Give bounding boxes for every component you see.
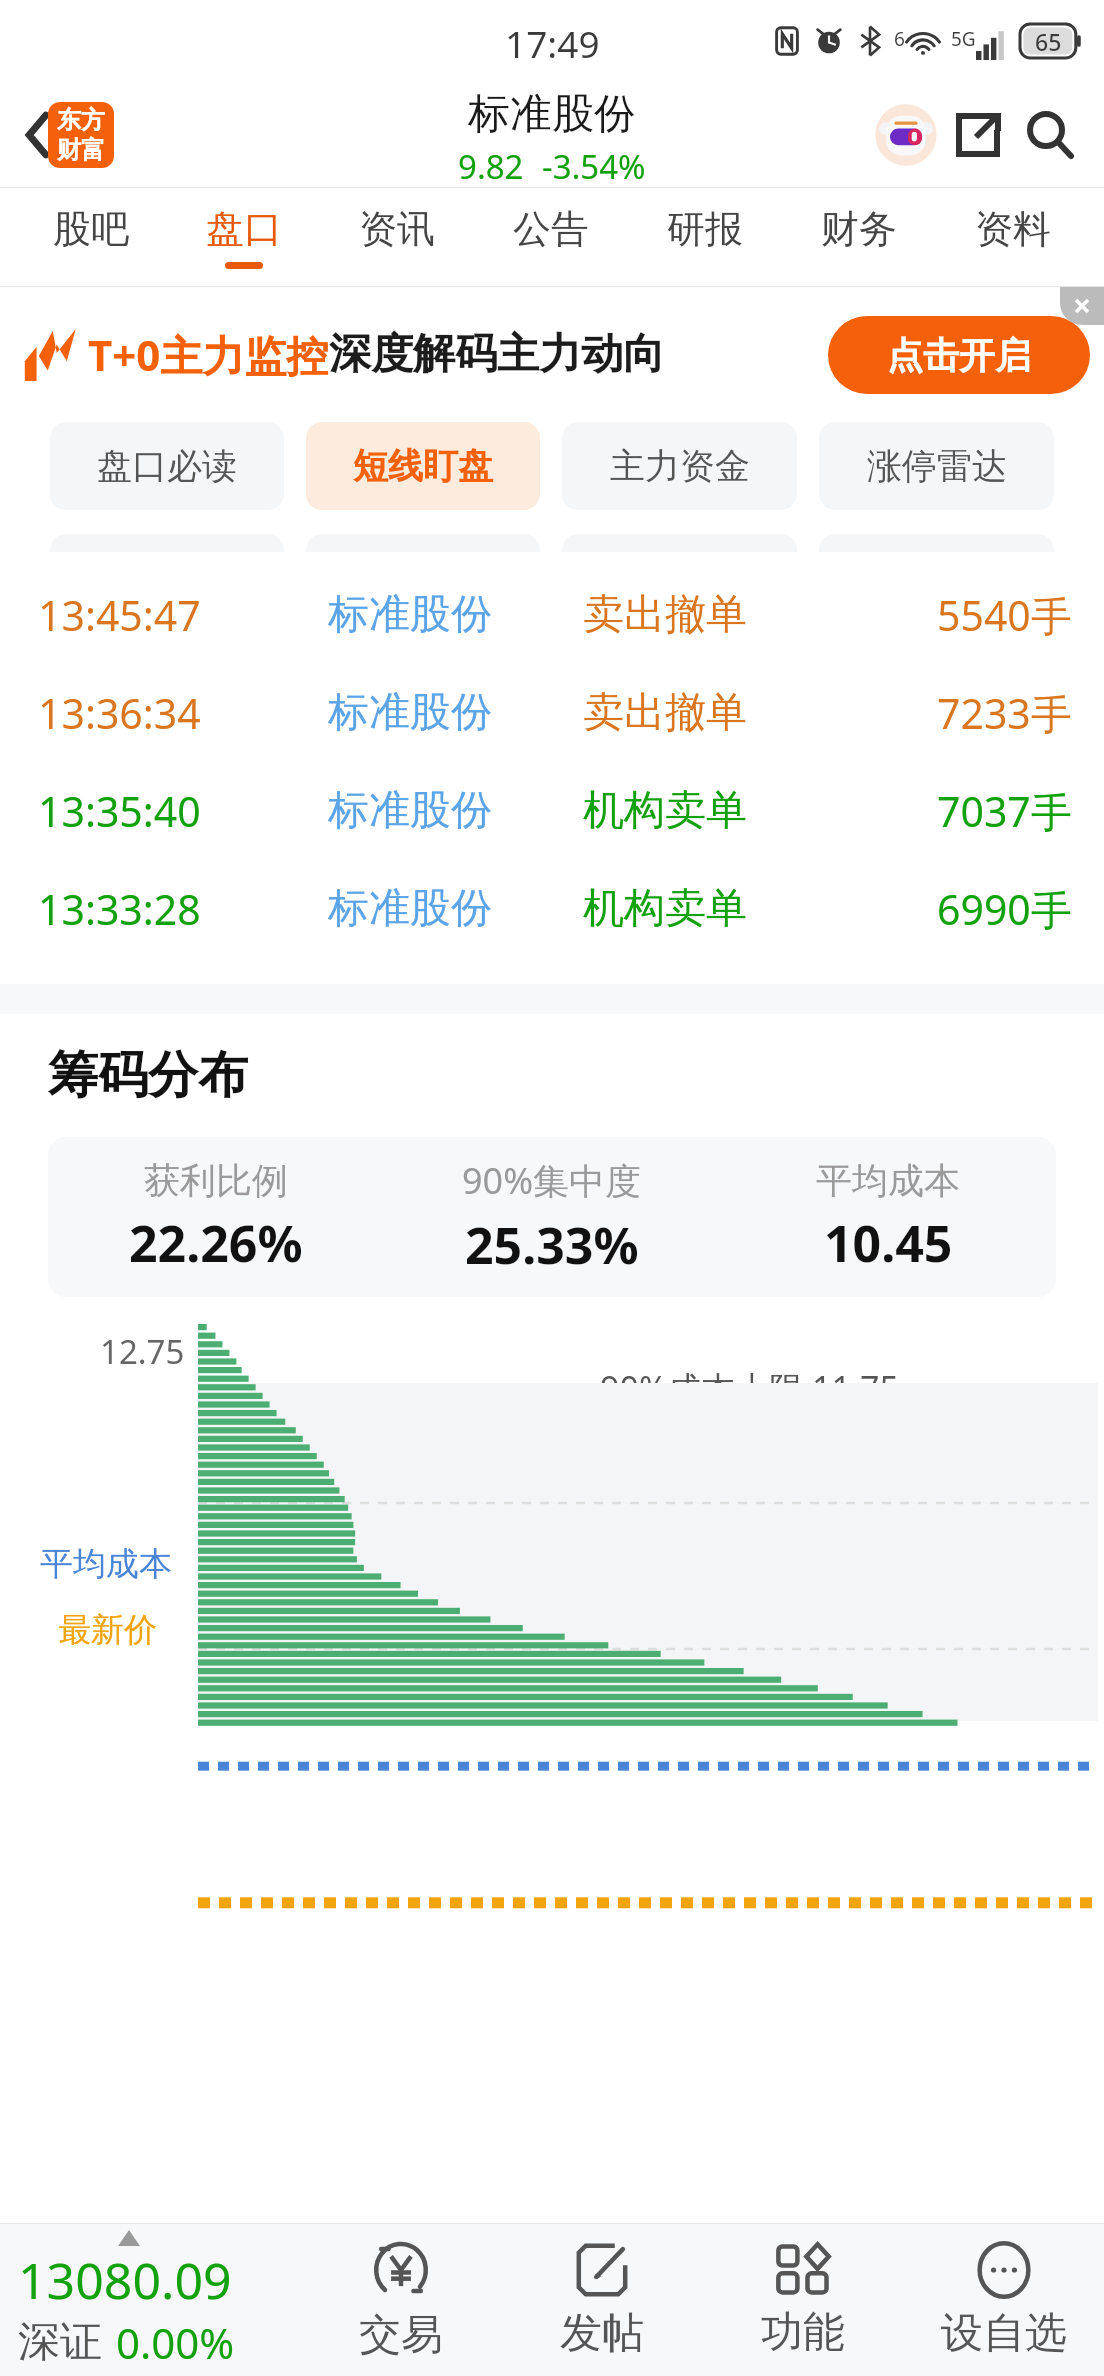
button[interactable]: 资料	[936, 188, 1090, 286]
staticText: 短线盯盘	[353, 444, 493, 488]
staticText: 公告	[513, 205, 589, 253]
staticText: 资讯	[359, 205, 435, 253]
staticText: 标准股份	[328, 589, 492, 641]
staticText: 6	[894, 26, 905, 52]
button[interactable]: Close ad	[1060, 287, 1104, 325]
staticText: 6990手	[937, 881, 1072, 937]
button[interactable]: 设自选	[903, 2224, 1104, 2376]
button[interactable]: 13:33:28	[0, 860, 1104, 958]
staticText: 功能	[761, 2306, 845, 2359]
staticText: 7037手	[937, 783, 1072, 839]
staticText: 标准股份	[328, 687, 492, 739]
button[interactable]: Share	[942, 99, 1014, 171]
staticText: 13:36:34	[38, 685, 201, 741]
button[interactable]: 点击开启	[828, 316, 1090, 394]
button[interactable]: 交易	[300, 2224, 501, 2376]
staticText: 资料	[975, 205, 1051, 253]
button[interactable]: 13:35:40	[0, 762, 1104, 860]
staticText: 标准股份	[328, 785, 492, 837]
staticText: 90%集中度	[462, 1156, 642, 1205]
staticText: 5540手	[937, 587, 1072, 643]
button[interactable]: 股吧	[14, 188, 167, 286]
staticText: 机构卖单	[583, 883, 747, 935]
button[interactable]: 13080.09	[18, 2230, 300, 2371]
button[interactable]: 盘口必读	[50, 422, 284, 510]
staticText: 发帖	[560, 2307, 644, 2360]
staticText: 财富	[57, 135, 105, 165]
button[interactable]: 13:36:34	[0, 664, 1104, 762]
staticText: 点击开启	[887, 333, 1031, 378]
staticText: 股吧	[53, 205, 129, 253]
staticText: 90%成本上限 11.75	[600, 1365, 899, 1411]
button[interactable]: 研报	[628, 188, 782, 286]
staticText: 65	[1035, 26, 1062, 57]
staticText: 平均成本	[40, 1543, 172, 1585]
button[interactable]: 资讯	[320, 188, 474, 286]
staticText: 0.00%	[116, 2314, 235, 2371]
staticText: 9.82	[458, 144, 524, 189]
staticText: 最新价	[58, 1609, 157, 1651]
button[interactable]: 短线盯盘	[306, 422, 540, 510]
button[interactable]: AI assistant	[870, 99, 942, 171]
staticText: 涨停雷达	[867, 444, 1007, 488]
staticText: 标准股份	[328, 883, 492, 935]
staticText: T+0主力监控	[88, 326, 329, 383]
staticText: 筹码分布	[48, 1044, 248, 1107]
button[interactable]: Search	[1014, 99, 1086, 171]
staticText: 深证	[18, 2316, 102, 2369]
staticText: 东方	[57, 105, 105, 135]
staticText: 13:33:28	[38, 881, 201, 937]
button[interactable]: 功能	[702, 2224, 903, 2376]
staticText: 交易	[359, 2309, 443, 2362]
button[interactable]: 财务	[782, 188, 936, 286]
staticText: 盘口	[206, 205, 282, 253]
button[interactable]: 主力资金	[562, 422, 797, 510]
staticText: 22.26%	[129, 1209, 303, 1277]
staticText: 5G	[951, 26, 976, 52]
button[interactable]: 发帖	[501, 2224, 702, 2376]
button[interactable]: 盘口	[167, 188, 320, 286]
button[interactable]: East Money	[48, 102, 114, 168]
staticText: 设自选	[941, 2307, 1067, 2360]
staticText: 主力资金	[610, 444, 750, 488]
button[interactable]: Back	[8, 105, 68, 165]
staticText: 深度解码主力动向	[329, 328, 665, 381]
staticText: 平均成本	[816, 1158, 960, 1203]
button[interactable]: 13:45:47	[0, 566, 1104, 664]
staticText: 13:45:47	[38, 587, 201, 643]
staticText: -3.54%	[542, 144, 646, 189]
staticText: 财务	[821, 205, 897, 253]
staticText: 17:49	[505, 18, 600, 68]
staticText: 7233手	[937, 685, 1072, 741]
staticText: 90%成本下限 7.00	[618, 1683, 898, 1729]
staticText: 机构卖单	[583, 785, 747, 837]
staticText: 获利比例	[144, 1158, 288, 1203]
button[interactable]: 涨停雷达	[819, 422, 1054, 510]
staticText: 卖出撤单	[583, 589, 747, 641]
staticText: 盘口必读	[97, 444, 237, 488]
staticText: 13080.09	[18, 2246, 232, 2314]
staticText: 10.45	[824, 1209, 953, 1277]
staticText: 研报	[667, 205, 743, 253]
staticText: 25.33%	[465, 1211, 639, 1279]
staticText: 12.75	[100, 1329, 185, 1374]
staticText: 卖出撤单	[583, 687, 747, 739]
button[interactable]: 公告	[474, 188, 628, 286]
staticText: 标准股份	[468, 88, 636, 141]
staticText: 13:35:40	[38, 783, 201, 839]
